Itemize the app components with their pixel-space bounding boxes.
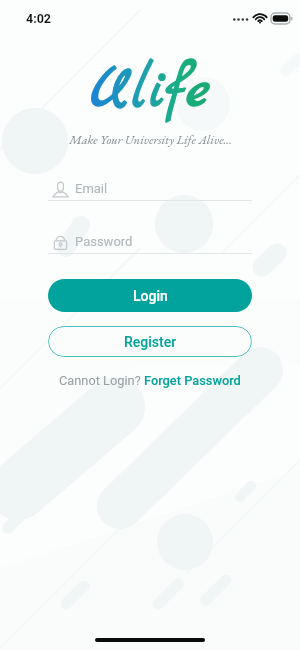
staticText: Password — [75, 234, 133, 249]
staticText: Forget Password — [144, 373, 241, 388]
button[interactable]: Forget Password — [144, 373, 241, 388]
staticText: Register — [124, 334, 177, 350]
staticText: Make Your University Life Alive… — [69, 131, 232, 147]
staticText: Ulife — [90, 53, 210, 129]
staticText: 4:02 — [26, 11, 52, 26]
staticText: Email — [75, 181, 108, 196]
staticText: Cannot Login? — [59, 373, 144, 388]
button[interactable]: Login — [48, 279, 252, 312]
staticText: Ulife — [90, 53, 210, 129]
staticText: Login — [133, 288, 168, 304]
button[interactable]: Register — [48, 326, 252, 357]
